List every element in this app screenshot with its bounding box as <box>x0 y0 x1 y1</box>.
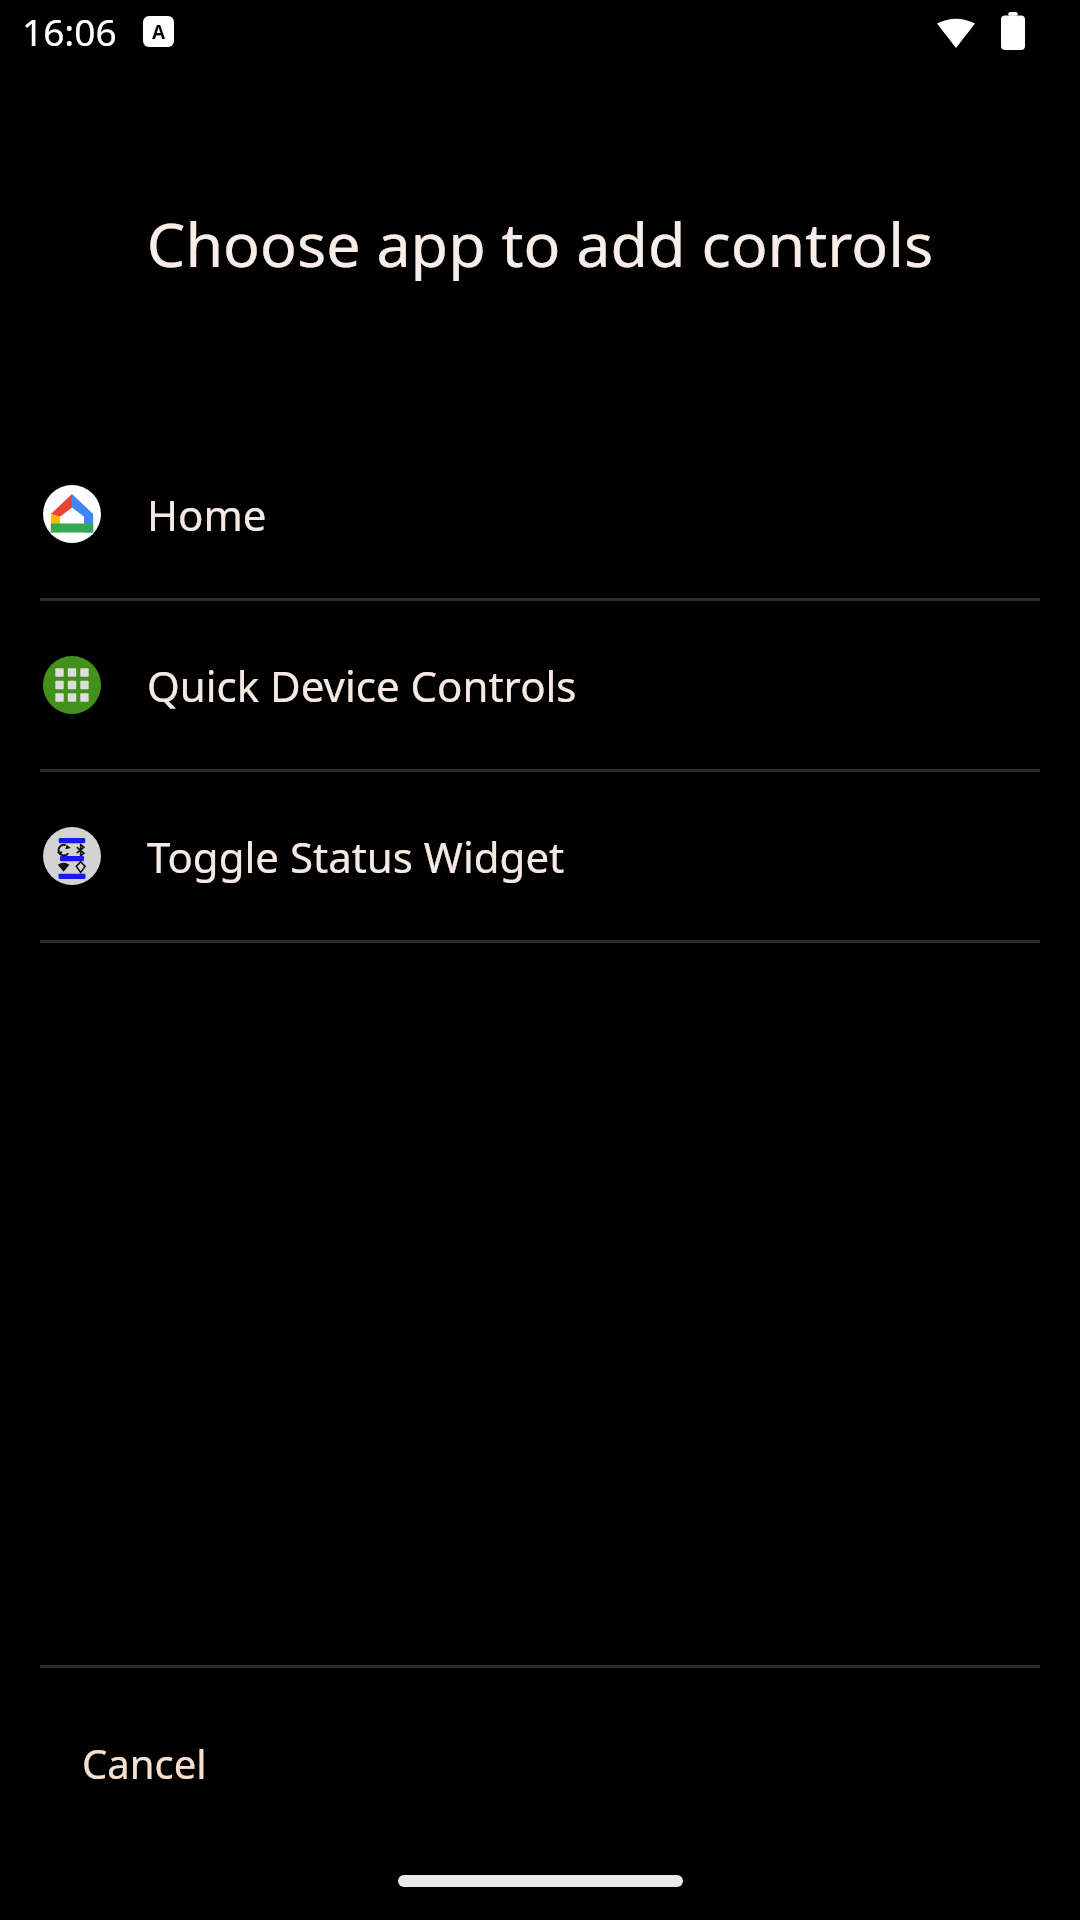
staticText: 16:06 <box>22 6 117 56</box>
staticText: Choose app to add controls <box>24 202 1056 285</box>
button[interactable]: Cancel <box>66 1720 223 1806</box>
other: Wi-Fi <box>937 12 975 50</box>
staticText: Home <box>147 486 267 543</box>
other: Battery <box>1001 12 1025 50</box>
other: Home app icon <box>43 485 101 543</box>
other: Quick Device Controls app icon <box>43 656 101 714</box>
button[interactable]: Toggle Status Widget app icon <box>0 772 1080 940</box>
button[interactable]: Quick Device Controls app icon <box>0 601 1080 769</box>
staticText: A <box>152 19 166 45</box>
staticText: Cancel <box>82 1736 207 1790</box>
other: Toggle Status Widget app icon <box>43 827 101 885</box>
button[interactable]: Home app icon <box>0 430 1080 598</box>
staticText: Toggle Status Widget <box>147 828 565 885</box>
staticText: Quick Device Controls <box>147 657 577 714</box>
